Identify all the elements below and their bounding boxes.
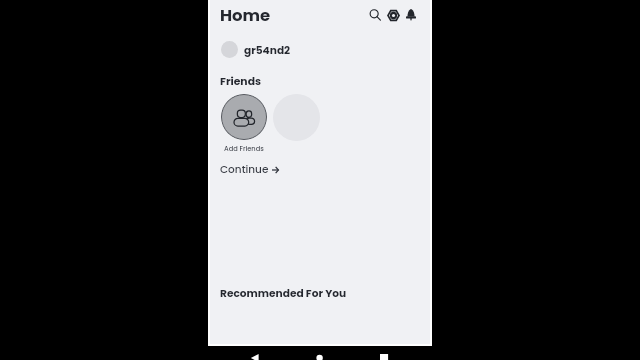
button[interactable]: Search	[366, 6, 384, 24]
staticText: Recommended For You	[220, 286, 347, 301]
staticText: Friends	[220, 74, 261, 89]
button[interactable]: gr54nd2	[218, 36, 306, 62]
button[interactable]: Home	[220, 4, 271, 27]
button[interactable]: Notifications	[402, 6, 420, 24]
staticText: gr54nd2	[244, 43, 291, 58]
staticText: Home	[220, 4, 271, 27]
button[interactable]: Continue	[218, 160, 292, 178]
staticText: Continue	[220, 162, 269, 177]
button[interactable]: Add Friends	[221, 94, 267, 140]
button[interactable]: Rewards	[384, 6, 402, 24]
button[interactable]: Friend	[273, 94, 320, 141]
staticText: Add Friends	[224, 144, 264, 153]
